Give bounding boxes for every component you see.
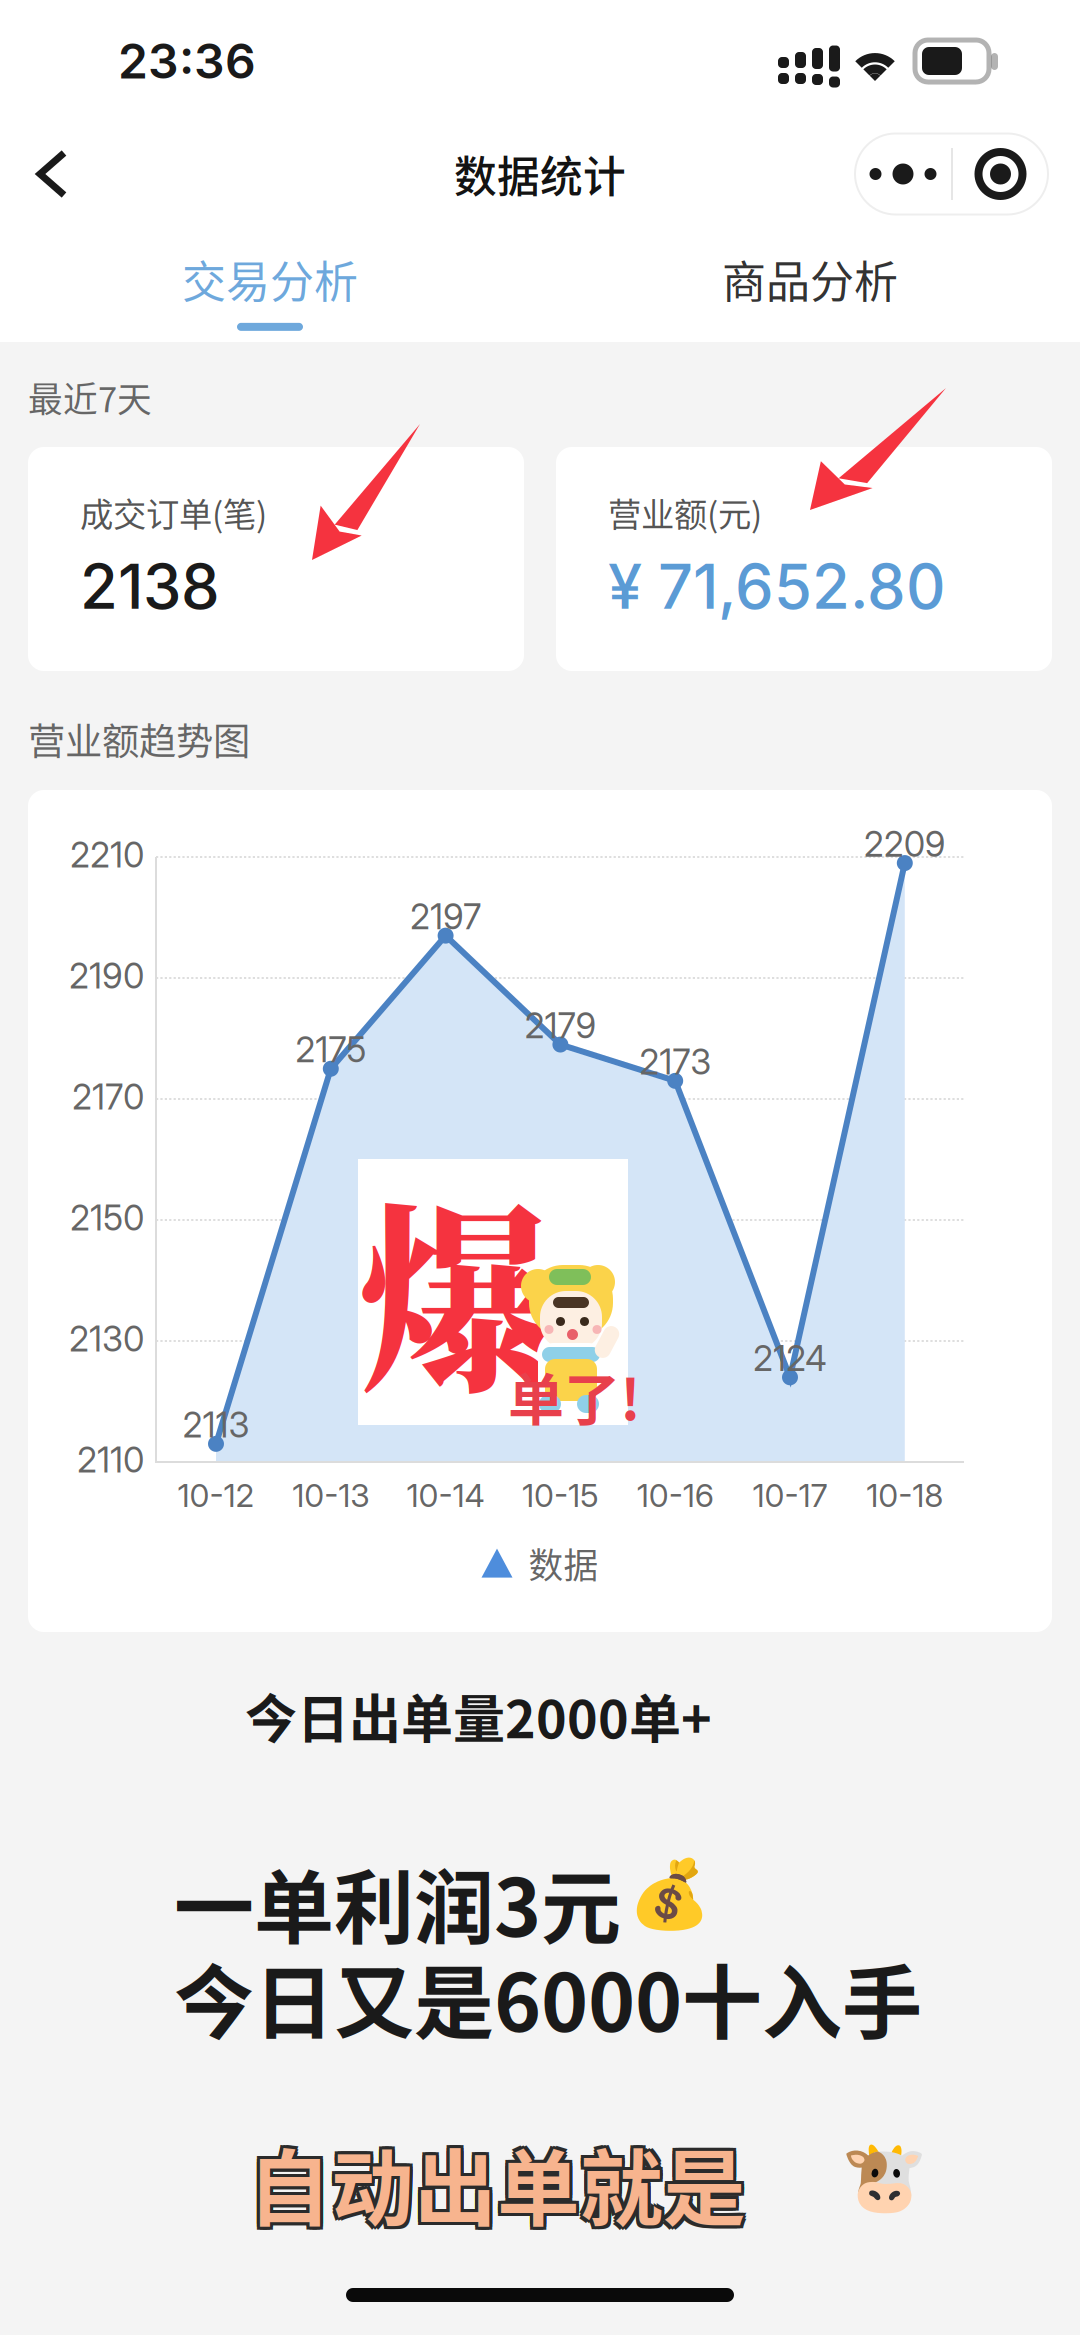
staticText: 自动出单就是 xyxy=(248,2120,746,2240)
staticText: 自动出单就是 xyxy=(245,2126,743,2246)
staticText: 10-17 xyxy=(752,1476,827,1515)
staticText: 今日又是6000十入手 xyxy=(174,1939,922,2055)
staticText: 2110 xyxy=(77,1439,144,1481)
button[interactable]: Close mini program xyxy=(953,133,1048,214)
staticText: 营业额趋势图 xyxy=(28,712,250,766)
staticText: 2150 xyxy=(70,1197,144,1239)
staticText: 最近7天 xyxy=(28,372,152,422)
staticText: 自动出单就是 xyxy=(251,2126,749,2246)
button[interactable]: More options xyxy=(855,133,951,214)
staticText: 2113 xyxy=(182,1404,249,1446)
staticText: 10-18 xyxy=(866,1476,943,1515)
staticText: 10-15 xyxy=(522,1476,599,1515)
staticText: 2210 xyxy=(70,834,144,876)
staticText: 自动出单就是 xyxy=(251,2123,749,2243)
button[interactable]: 交易分析 xyxy=(0,236,540,342)
button[interactable]: 商品分析 xyxy=(540,236,1080,342)
staticText: 2179 xyxy=(524,1004,596,1046)
staticText: 2175 xyxy=(295,1029,366,1071)
staticText: 数据统计 xyxy=(454,143,626,205)
staticText: 成交订单(笔) xyxy=(80,488,267,536)
staticText: 2209 xyxy=(864,823,946,865)
staticText: 数据 xyxy=(528,1538,598,1588)
staticText: 2124 xyxy=(753,1337,827,1379)
staticText: 10-14 xyxy=(407,1476,485,1515)
staticText: 自动出单就是 xyxy=(245,2120,743,2240)
staticText: 自动出单就是 xyxy=(248,2123,746,2243)
staticText: 一单利润3元 xyxy=(174,1844,621,1960)
staticText: 2170 xyxy=(72,1076,144,1118)
staticText: ¥ 71,652.80 xyxy=(608,549,946,623)
staticText: 10-12 xyxy=(177,1476,254,1515)
staticText: 2197 xyxy=(410,896,481,937)
staticText: 💰 xyxy=(628,1855,711,1933)
staticText: 2130 xyxy=(69,1318,144,1360)
staticText: 23:36 xyxy=(118,32,256,90)
staticText: 2138 xyxy=(80,549,220,623)
staticText: 今日出单量2000单+ xyxy=(245,1678,712,1753)
staticText: 营业额(元) xyxy=(608,488,762,536)
staticText: 自动出单就是 xyxy=(251,2120,749,2240)
staticText: 自动出单就是 xyxy=(248,2126,746,2246)
staticText: 10-16 xyxy=(637,1476,714,1515)
staticText: 爆 xyxy=(357,1144,557,1432)
staticText: 2190 xyxy=(69,955,144,997)
staticText: 自动出单就是 xyxy=(245,2123,743,2243)
button[interactable]: Back xyxy=(0,127,100,221)
staticText: 10-13 xyxy=(292,1476,369,1515)
staticText: 2173 xyxy=(639,1041,711,1083)
staticText: 交易分析 xyxy=(182,247,358,311)
staticText: 🐮 xyxy=(841,2137,927,2218)
staticText: 商品分析 xyxy=(722,247,898,311)
staticText: 单了! xyxy=(508,1355,641,1436)
